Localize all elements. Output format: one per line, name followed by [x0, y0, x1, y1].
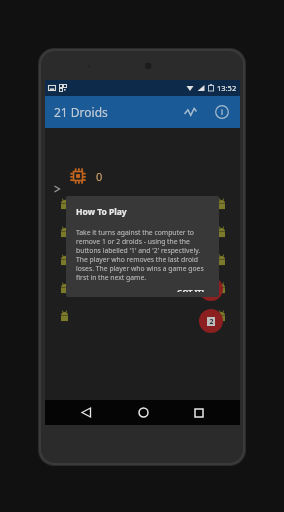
button[interactable]: GOT IT! [171, 282, 210, 297]
staticText: 0 [96, 169, 103, 184]
button[interactable]: Statistics [180, 102, 200, 122]
button[interactable]: Home [128, 400, 158, 425]
staticText: Take it turns against the computer to re… [76, 228, 210, 282]
button[interactable]: 2 [199, 309, 223, 333]
button[interactable]: Recent apps [184, 400, 214, 425]
button[interactable]: About [212, 102, 232, 122]
staticText: How To Play [76, 206, 127, 218]
staticText: 13:52 [217, 83, 237, 93]
staticText: 2 [209, 317, 214, 326]
button[interactable]: 1 [199, 277, 223, 301]
staticText: 21 Droids [54, 104, 108, 120]
staticText: GOT IT! [177, 287, 204, 292]
button[interactable]: Back [71, 400, 101, 425]
